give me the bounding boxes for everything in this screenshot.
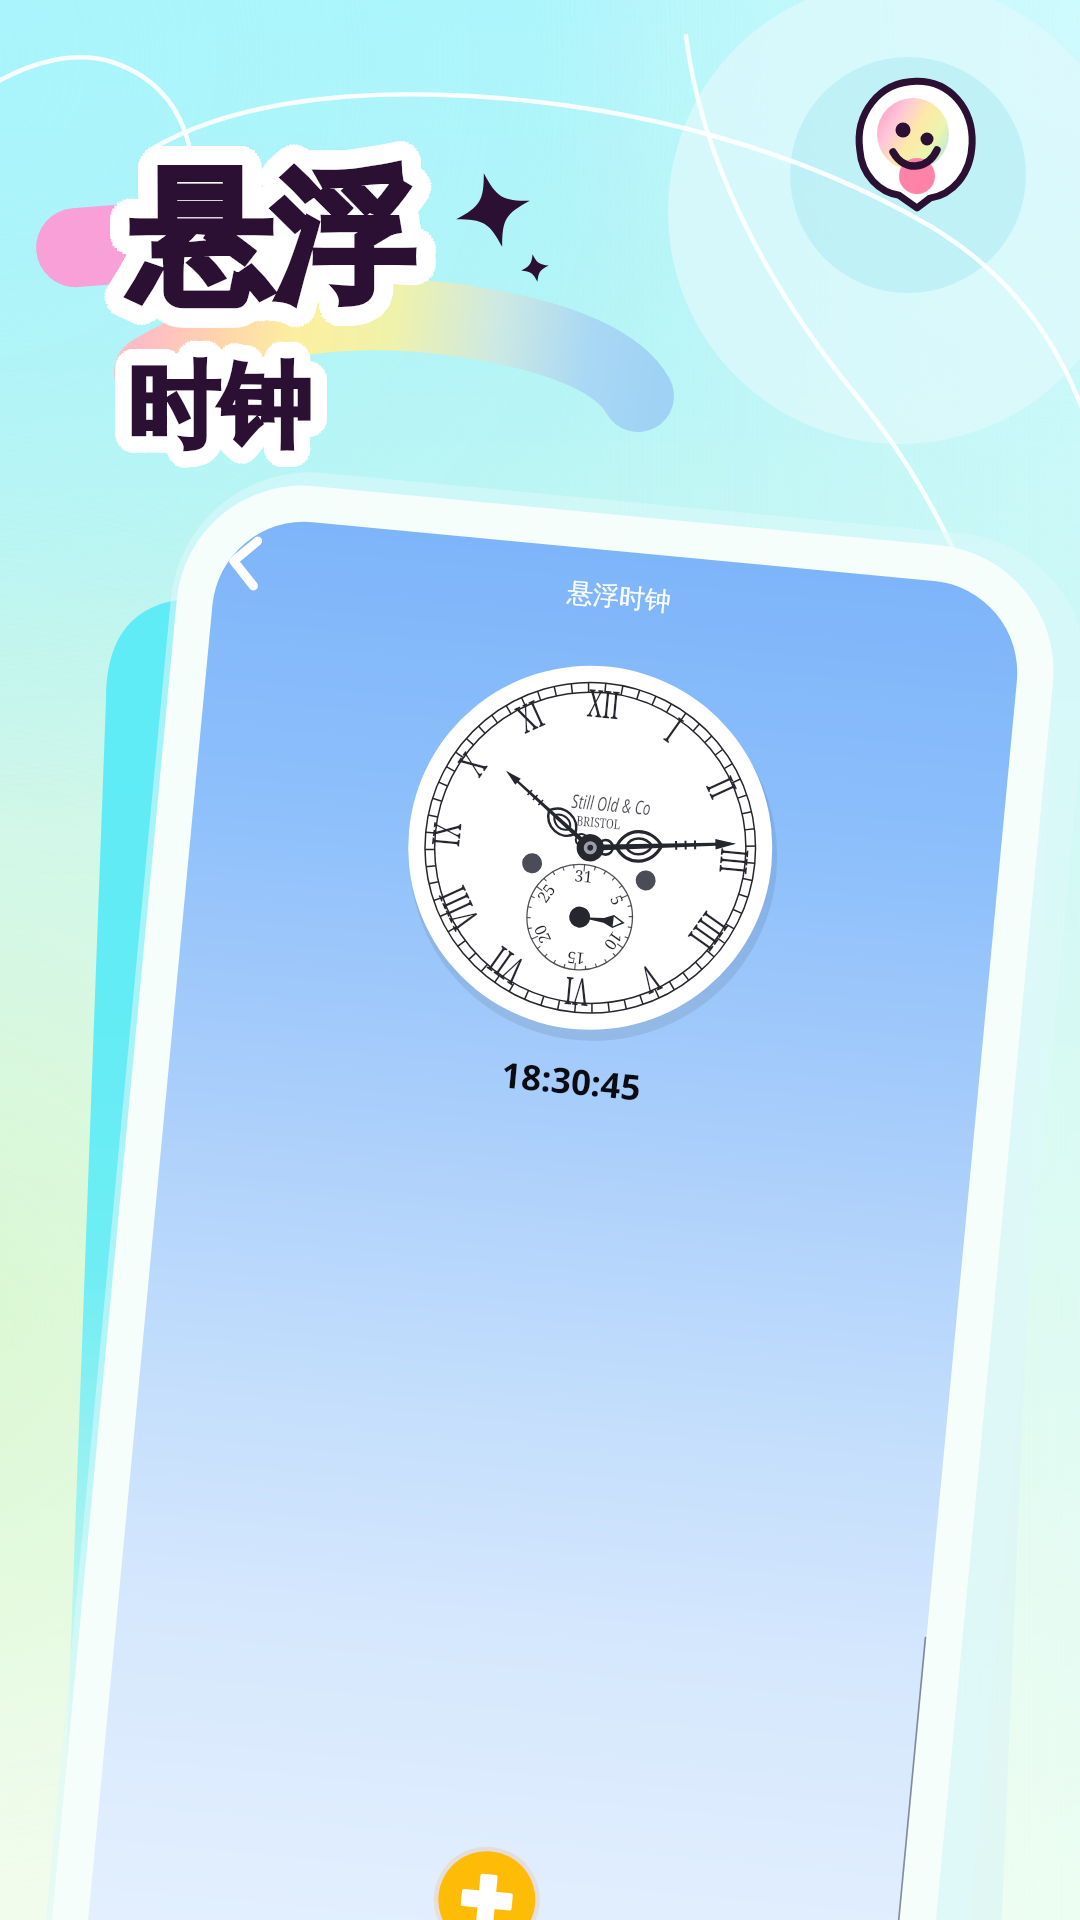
button[interactable]: Back [208,528,286,606]
button[interactable]: App icon [845,70,1010,235]
button[interactable]: Add floating clock [432,1845,544,1920]
